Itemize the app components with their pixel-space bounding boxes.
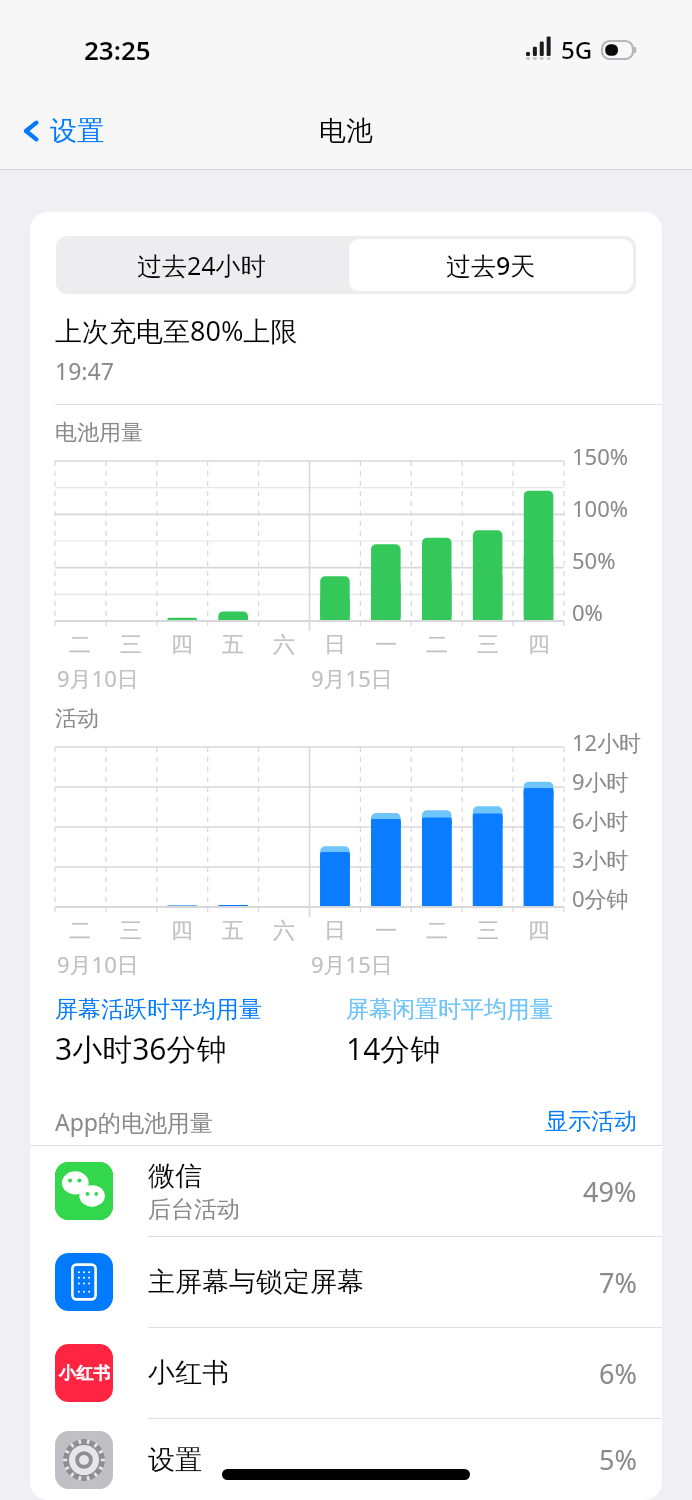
staticText: 0% <box>572 597 603 627</box>
staticText: 9小时 <box>572 766 629 796</box>
staticText: 六 <box>273 631 295 659</box>
staticText: 五 <box>222 917 244 945</box>
staticText: 日 <box>324 917 346 945</box>
staticText: 四 <box>528 631 550 659</box>
staticText: 二 <box>69 631 91 659</box>
staticText: 活动 <box>55 705 99 733</box>
staticText: 3小时 <box>572 844 629 874</box>
staticText: 9月10日 <box>57 949 139 979</box>
staticText: 三 <box>120 631 142 659</box>
button[interactable]: 小红书 <box>30 1328 662 1418</box>
staticText: 100% <box>572 493 629 523</box>
staticText: 四 <box>528 917 550 945</box>
staticText: 屏幕活跃时平均用量 <box>55 995 262 1024</box>
staticText: 9月15日 <box>311 949 393 979</box>
staticText: 三 <box>120 917 142 945</box>
staticText: 三 <box>477 917 499 945</box>
staticText: 四 <box>171 631 193 659</box>
staticText: 设置 <box>148 1443 202 1477</box>
staticText: 过去24小时 <box>137 248 266 282</box>
staticText: 电池 <box>319 114 373 148</box>
staticText: 上次充电至80%上限 <box>55 312 298 349</box>
staticText: 7% <box>599 1264 637 1301</box>
button[interactable]: 微信 <box>30 1146 662 1236</box>
staticText: 小红书 <box>59 1363 110 1384</box>
staticText: 主屏幕与锁定屏幕 <box>148 1265 364 1299</box>
staticText: 电池用量 <box>55 419 143 447</box>
staticText: 二 <box>426 631 448 659</box>
button[interactable]: 设置 <box>30 1419 662 1500</box>
staticText: 6% <box>599 1355 637 1392</box>
button[interactable]: 过去9天 <box>349 239 633 291</box>
button[interactable]: 显示活动 <box>545 1107 637 1136</box>
staticText: 19:47 <box>55 355 114 386</box>
staticText: 3小时36分钟 <box>55 1028 227 1069</box>
staticText: 一 <box>375 917 397 945</box>
staticText: 一 <box>375 631 397 659</box>
staticText: 50% <box>572 545 616 575</box>
staticText: 5% <box>599 1441 637 1478</box>
staticText: 14分钟 <box>346 1028 441 1069</box>
staticText: 四 <box>171 917 193 945</box>
staticText: 49% <box>583 1173 637 1210</box>
staticText: 过去9天 <box>446 248 536 282</box>
staticText: 150% <box>572 441 629 471</box>
staticText: App的电池用量 <box>55 1106 545 1137</box>
staticText: 小红书 <box>148 1356 229 1390</box>
staticText: 设置 <box>50 114 104 148</box>
staticText: 屏幕闲置时平均用量 <box>346 995 553 1024</box>
staticText: 后台活动 <box>148 1195 240 1224</box>
staticText: 日 <box>324 631 346 659</box>
staticText: 二 <box>69 917 91 945</box>
staticText: 6小时 <box>572 805 629 835</box>
button[interactable]: 过去24小时 <box>56 236 346 294</box>
staticText: 23:25 <box>84 32 151 67</box>
staticText: 二 <box>426 917 448 945</box>
button[interactable]: 主屏幕与锁定屏幕 <box>30 1237 662 1327</box>
staticText: 三 <box>477 631 499 659</box>
staticText: 五 <box>222 631 244 659</box>
staticText: 5G <box>561 33 593 66</box>
staticText: 9月15日 <box>311 663 393 693</box>
staticText: 0分钟 <box>572 883 629 913</box>
staticText: 9月10日 <box>57 663 139 693</box>
button[interactable]: 设置 <box>14 108 112 154</box>
staticText: 显示活动 <box>545 1107 637 1136</box>
staticText: 12小时 <box>572 727 642 757</box>
staticText: 微信 <box>148 1159 202 1193</box>
staticText: 六 <box>273 917 295 945</box>
